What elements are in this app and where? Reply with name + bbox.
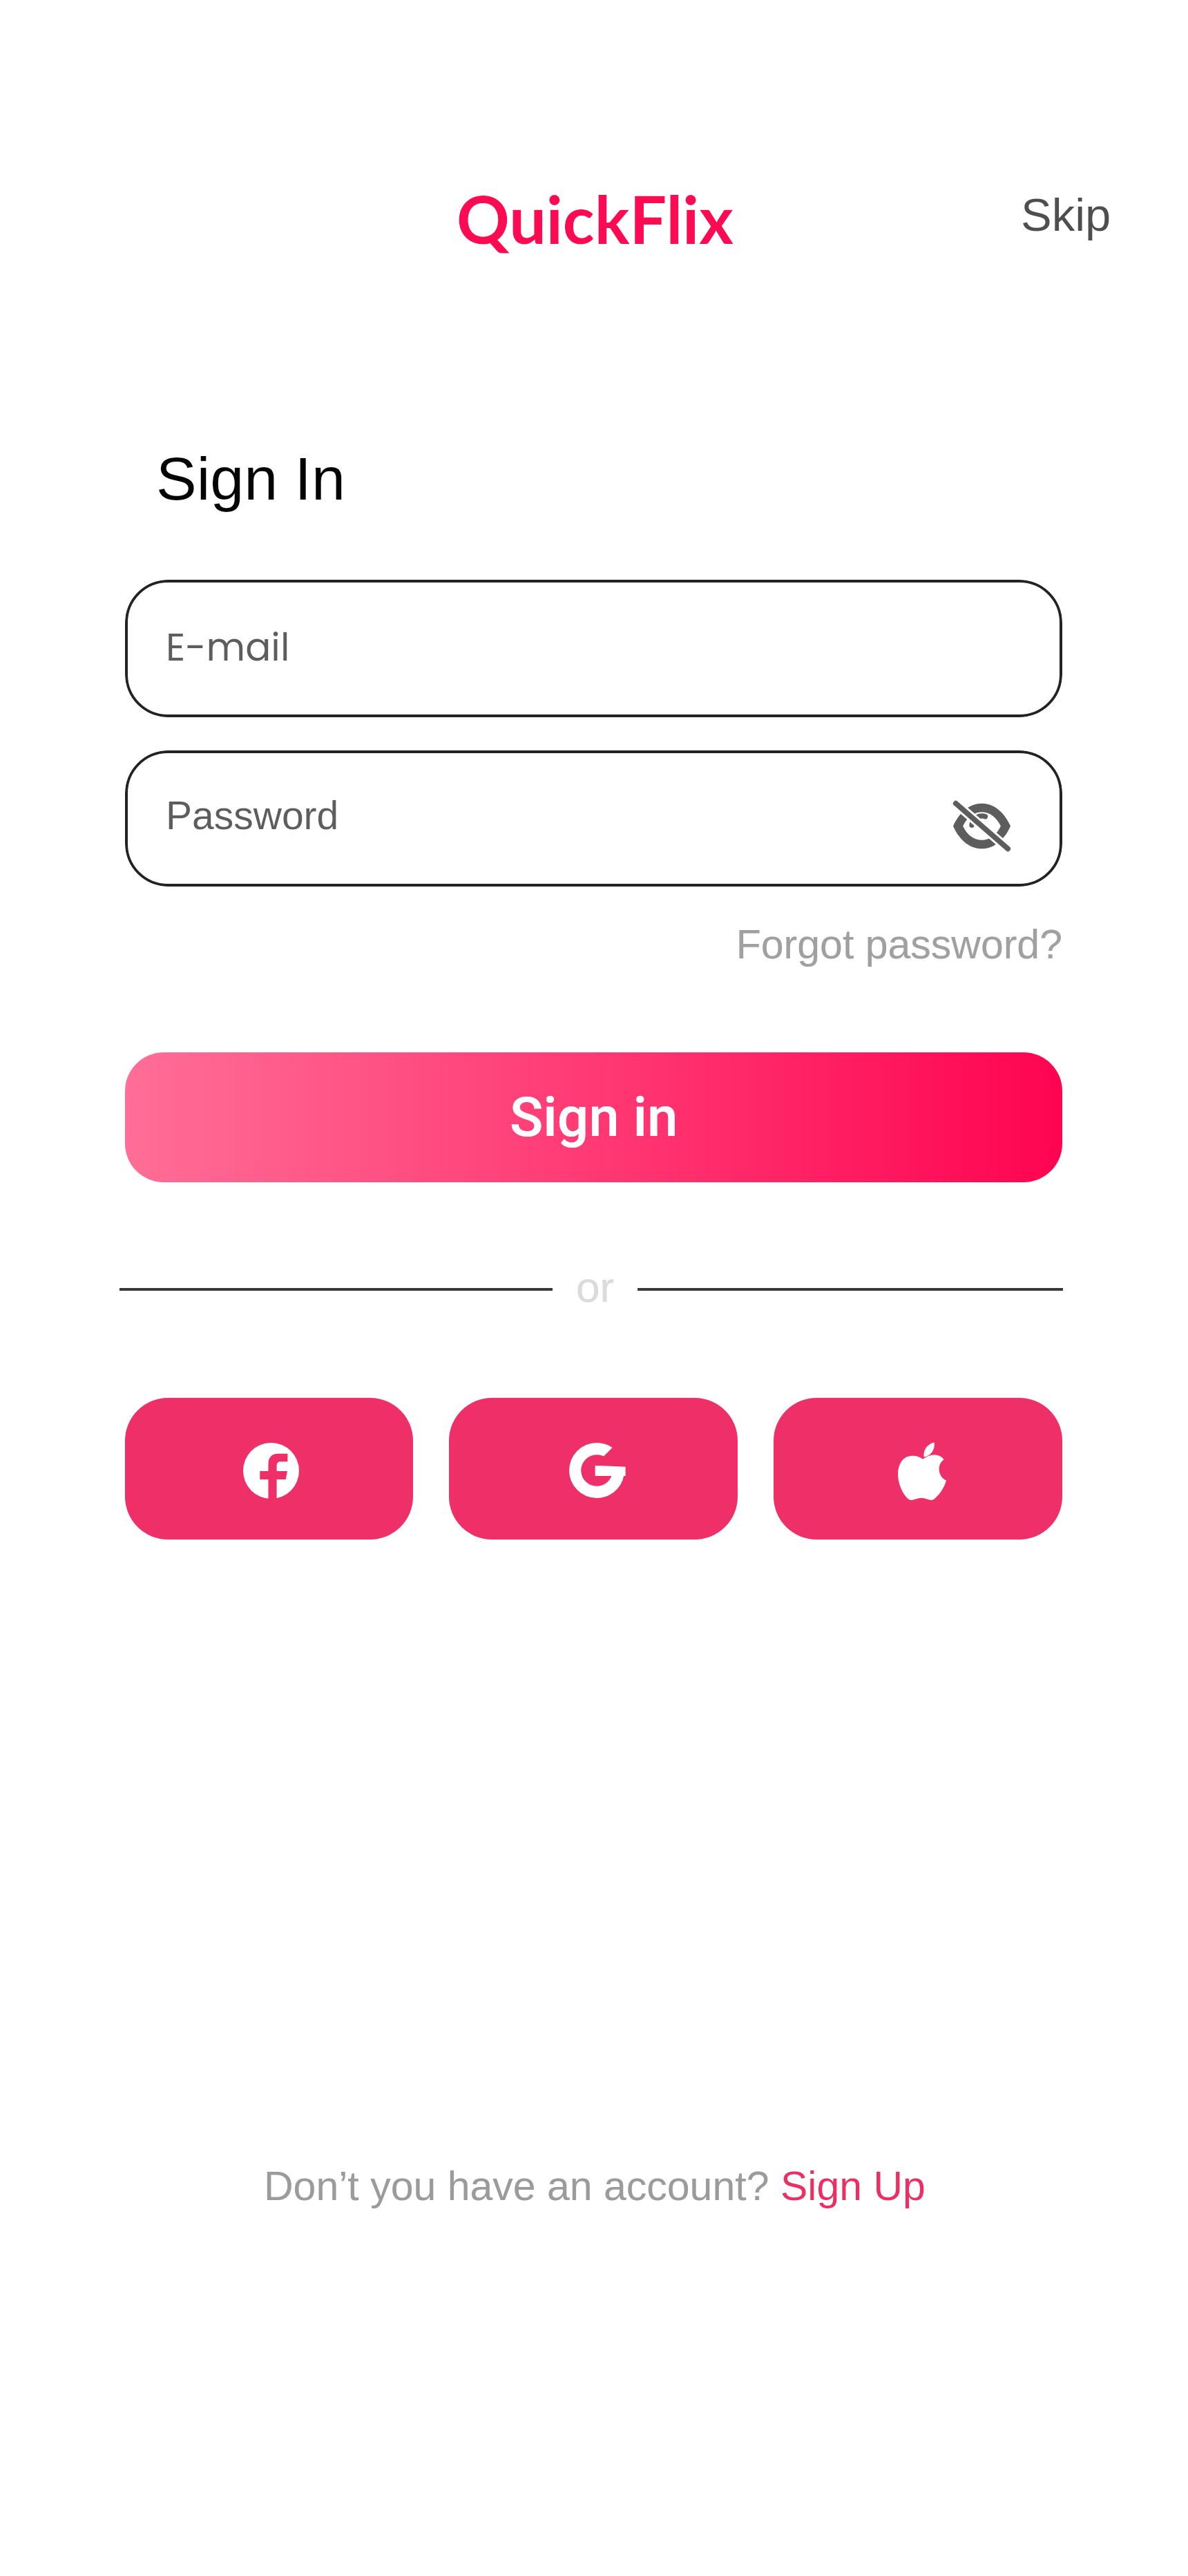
staticText: Don’t you have an account?: [264, 2163, 780, 2209]
staticText: Skip: [1021, 189, 1111, 240]
button[interactable]: Sign in: [125, 1052, 1062, 1182]
staticText: Sign in: [510, 1085, 678, 1150]
button[interactable]: Password: [125, 750, 1062, 887]
staticText: QuickFlix: [457, 179, 734, 258]
button[interactable]: Show password: [943, 788, 1019, 864]
button[interactable]: Skip: [1021, 189, 1111, 240]
staticText: Sign Up: [780, 2163, 926, 2209]
button[interactable]: Forgot password?: [125, 922, 1062, 967]
staticText: Sign In: [156, 444, 345, 512]
staticText: E-mail: [166, 621, 290, 674]
staticText: or: [576, 1263, 615, 1311]
button[interactable]: Don’t you have an account?: [264, 2163, 926, 2209]
staticText: Password: [166, 793, 339, 837]
button[interactable]: Sign in with Google: [449, 1398, 738, 1540]
staticText: Forgot password?: [125, 922, 1062, 967]
button[interactable]: Sign in with Facebook: [125, 1398, 413, 1540]
button[interactable]: E-mail: [125, 580, 1062, 717]
button[interactable]: Sign in with Apple: [774, 1398, 1062, 1540]
